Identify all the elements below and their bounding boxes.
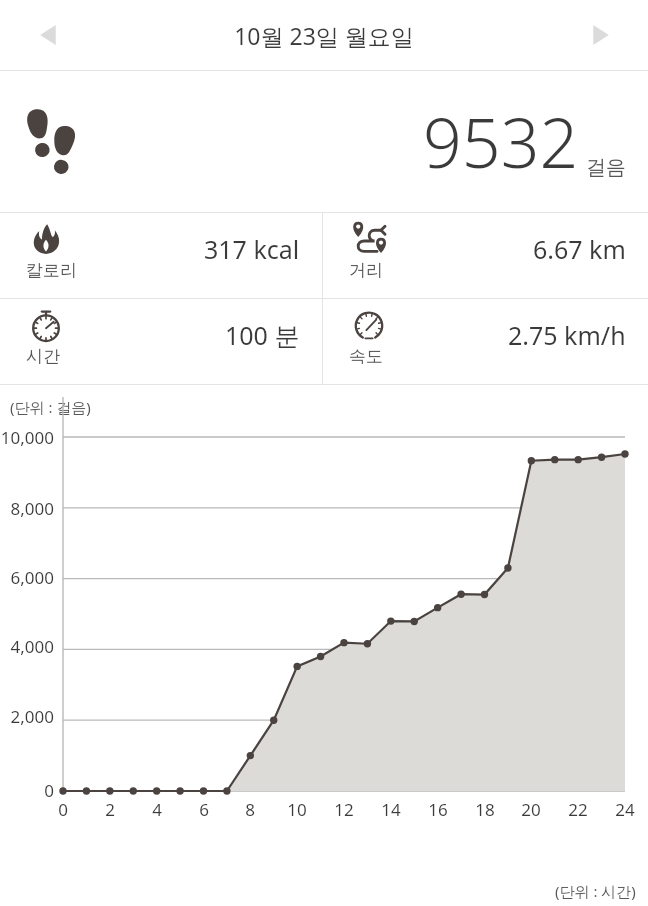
button[interactable]: 칼로리 — [0, 213, 322, 298]
button[interactable]: 9532 — [0, 71, 648, 212]
staticText: 6 — [186, 798, 222, 821]
staticText: 9532 — [423, 95, 579, 188]
staticText: 걸음 — [586, 155, 626, 180]
staticText: 6.67 km — [533, 232, 626, 266]
button[interactable]: Previous day — [20, 7, 76, 63]
staticText: 속도 — [349, 346, 383, 367]
button[interactable]: Next day — [572, 7, 628, 63]
staticText: 20 — [513, 798, 549, 821]
staticText: 317 kcal — [204, 232, 300, 266]
staticText: 24 — [607, 798, 643, 821]
staticText: 8 — [232, 798, 268, 821]
staticText: (단위 : 걸음) — [10, 397, 91, 417]
staticText: 거리 — [349, 260, 383, 281]
staticText: 10 — [279, 798, 315, 821]
staticText: 시간 — [26, 346, 60, 367]
staticText: 100 분 — [225, 318, 300, 352]
staticText: 6,000 — [0, 566, 54, 589]
button[interactable]: 거리 — [323, 213, 648, 298]
staticText: 4,000 — [0, 635, 54, 658]
staticText: (단위 : 시간) — [555, 881, 636, 901]
staticText: 2,000 — [0, 705, 54, 728]
staticText: 2 — [92, 798, 128, 821]
staticText: 4 — [139, 798, 175, 821]
staticText: 8,000 — [0, 497, 54, 520]
staticText: 16 — [420, 798, 456, 821]
staticText: 2.75 km/h — [508, 318, 626, 352]
button[interactable]: 시간 — [0, 299, 322, 384]
staticText: 0 — [45, 798, 81, 821]
staticText: 0 — [0, 779, 54, 802]
staticText: 10월 23일 월요일 — [234, 20, 414, 51]
staticText: 14 — [373, 798, 409, 821]
staticText: 22 — [560, 798, 596, 821]
staticText: 칼로리 — [26, 260, 77, 281]
staticText: 12 — [326, 798, 362, 821]
staticText: 10,000 — [0, 426, 54, 449]
staticText: 18 — [467, 798, 503, 821]
button[interactable]: 속도 — [323, 299, 648, 384]
